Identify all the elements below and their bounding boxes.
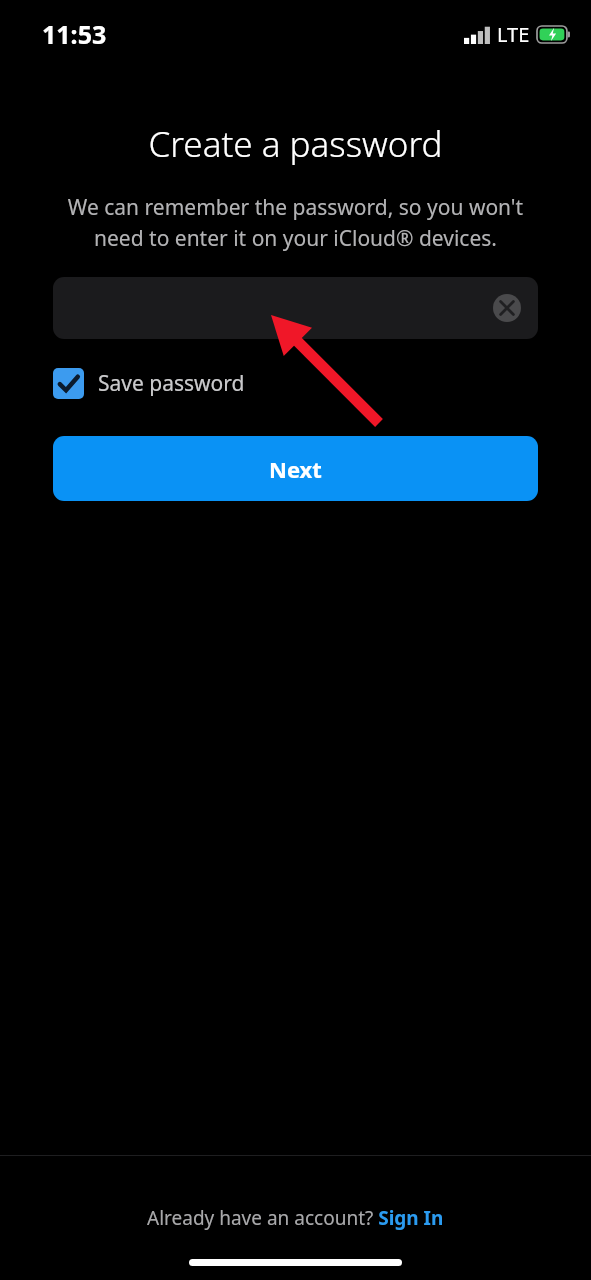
staticText: Save password (98, 369, 245, 398)
button[interactable]: Clear text (53, 277, 538, 339)
staticText: 11:53 (42, 17, 107, 51)
staticText: Next (269, 454, 322, 484)
button[interactable]: Clear text (488, 289, 526, 327)
staticText: LTE (497, 21, 530, 48)
staticText: Already have an account? Sign In (147, 1205, 444, 1231)
staticText: Create a password (0, 120, 591, 168)
staticText: We can remember the password, so you won… (40, 193, 551, 252)
button[interactable]: Save password (53, 365, 245, 401)
button[interactable]: Next (53, 436, 538, 501)
button[interactable]: Already have an account? Sign In (139, 1201, 452, 1235)
